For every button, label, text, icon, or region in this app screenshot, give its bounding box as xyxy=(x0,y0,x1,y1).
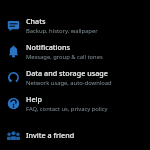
button[interactable]: Invite a friend xyxy=(0,124,150,146)
staticText: Message, group & call tones xyxy=(26,53,103,61)
staticText: Chats xyxy=(26,16,46,26)
staticText: Backup, history, wallpaper xyxy=(26,27,98,35)
staticText: Invite a friend xyxy=(26,130,75,140)
button[interactable]: Data and storage usage xyxy=(0,64,150,90)
other: Help xyxy=(7,97,20,110)
staticText: Notifications xyxy=(26,42,70,52)
staticText: FAQ, contact us, privacy policy xyxy=(26,105,108,113)
staticText: Help xyxy=(26,94,42,104)
button[interactable]: Notifications xyxy=(0,38,150,64)
other: Data and storage usage xyxy=(7,71,20,84)
other: Invite a friend xyxy=(7,129,20,142)
button[interactable]: Chats xyxy=(0,12,150,38)
other: Chats xyxy=(7,19,20,32)
staticText: Network usage, auto-download xyxy=(26,79,112,87)
button[interactable]: Help xyxy=(0,90,150,116)
other: Notifications xyxy=(7,45,20,58)
staticText: Data and storage usage xyxy=(26,68,108,78)
